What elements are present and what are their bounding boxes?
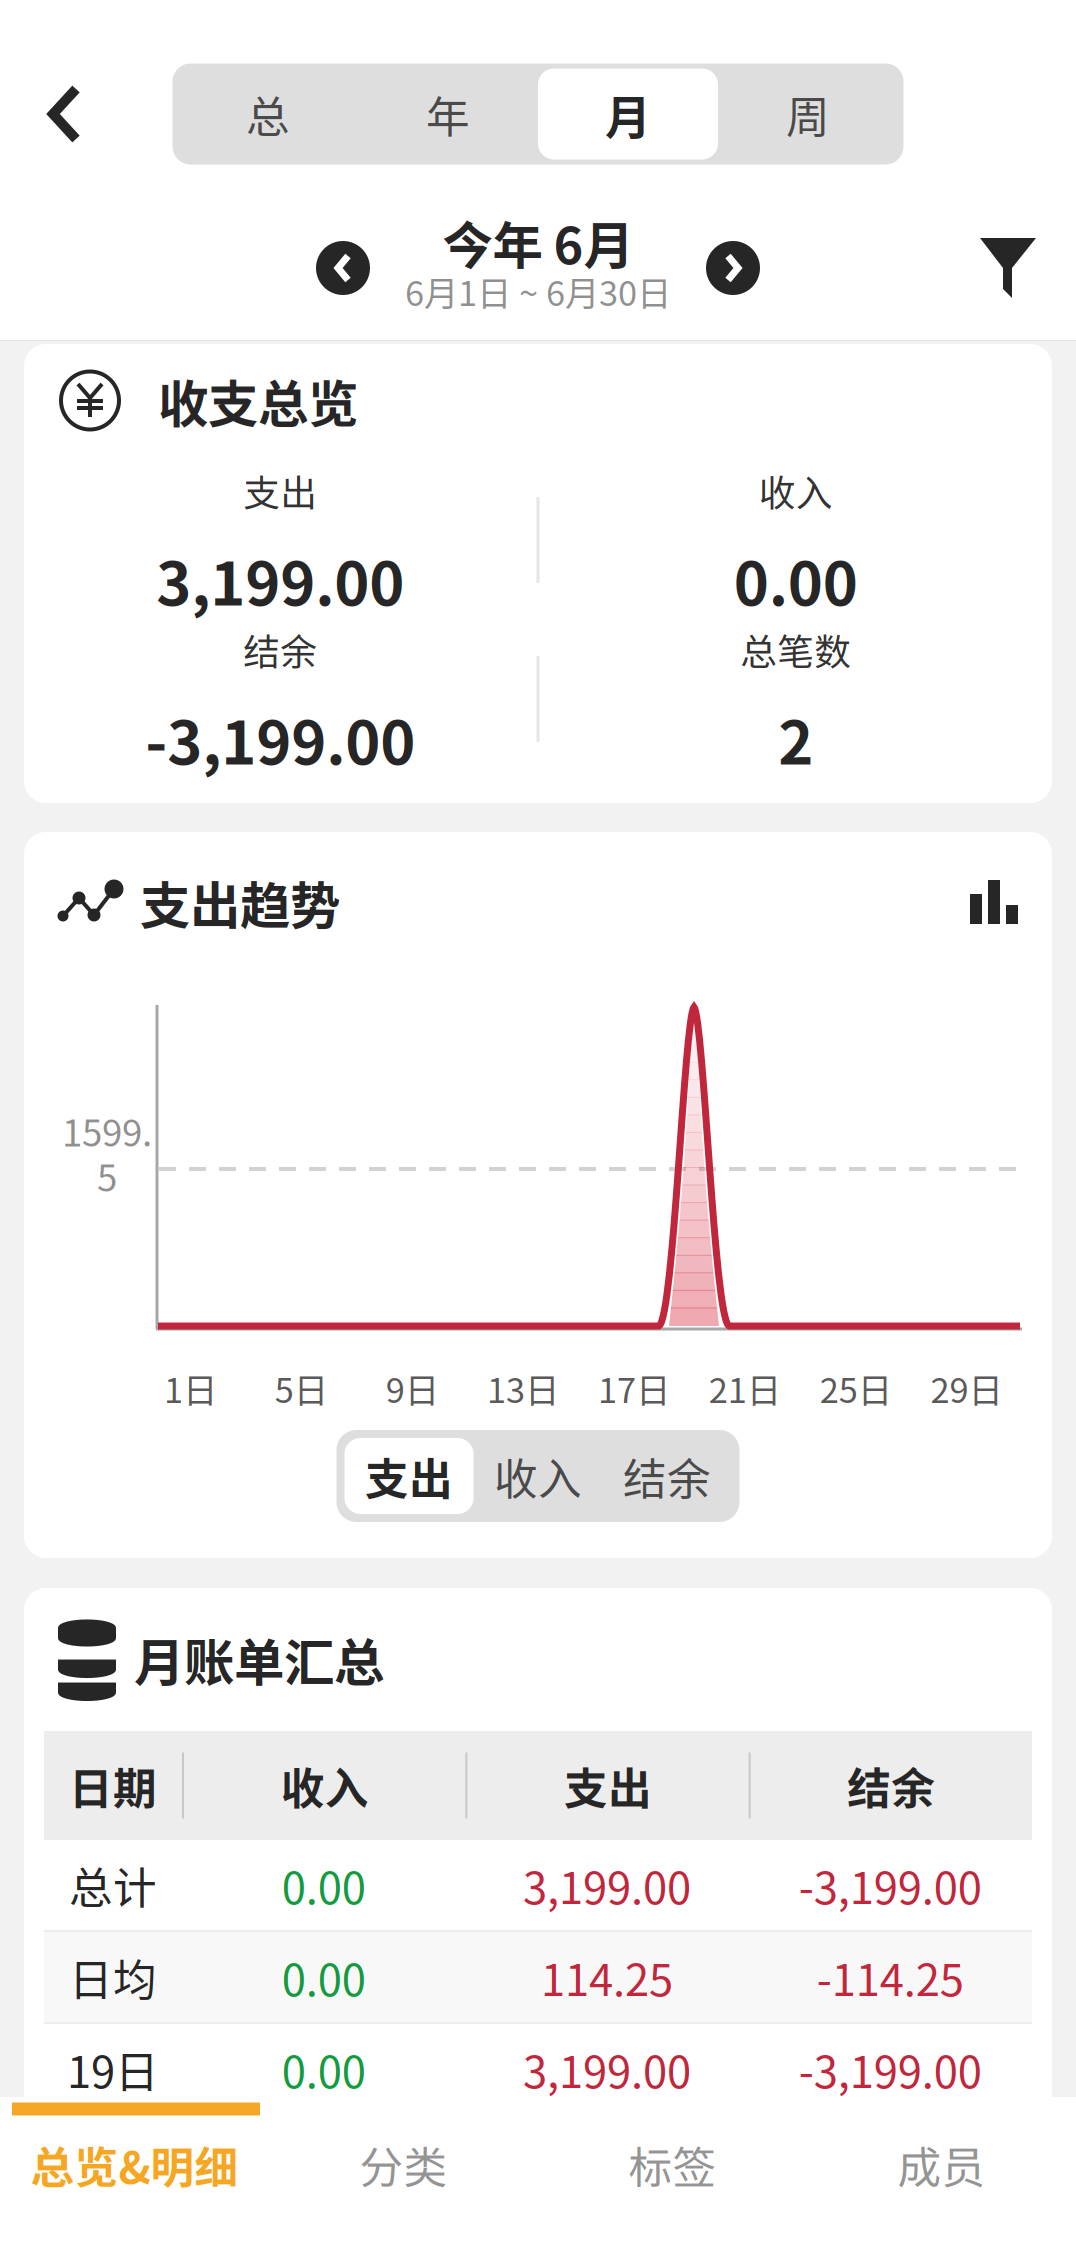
staticText: 5日 [275, 1363, 328, 1413]
staticText: 19日 [67, 2037, 159, 2101]
button[interactable]: 收入 [473, 1438, 602, 1514]
staticText: 分类 [359, 2133, 447, 2196]
button[interactable]: Next period [706, 241, 760, 295]
staticText: 25日 [820, 1363, 892, 1413]
staticText: 收入 [494, 1444, 582, 1508]
staticText: 结余 [243, 623, 317, 676]
staticText: 标签 [628, 2133, 716, 2196]
button[interactable]: Switch chart type [970, 878, 1018, 926]
button[interactable]: 结余 [602, 1438, 731, 1514]
staticText: 5 [97, 1149, 117, 1202]
staticText: 成员 [897, 2133, 985, 2196]
staticText: 支出 [564, 1754, 652, 1817]
staticText: 月 [605, 81, 651, 147]
staticText: 21日 [709, 1363, 781, 1413]
staticText: 支出 [365, 1444, 453, 1508]
staticText: 1日 [164, 1363, 217, 1413]
staticText: 日均 [69, 1945, 157, 2009]
staticText: 6月1日 ~ 6月30日 [405, 266, 671, 316]
staticText: 总览&明细 [30, 2133, 238, 2196]
staticText: 月账单汇总 [134, 1622, 384, 1696]
staticText: 日期 [69, 1754, 157, 1817]
staticText: 3,199.00 [523, 2037, 691, 2101]
button[interactable]: Filter [952, 212, 1064, 324]
staticText: 13日 [487, 1363, 559, 1413]
staticText: 年 [426, 82, 470, 146]
button[interactable]: 支出 [344, 1438, 473, 1514]
staticText: 17日 [598, 1363, 670, 1413]
staticText: 支出 [243, 464, 317, 517]
staticText: 1599. [62, 1104, 152, 1157]
staticText: 0.00 [734, 536, 858, 623]
staticText: 总笔数 [740, 623, 851, 676]
button[interactable]: 总览&明细 [0, 2097, 269, 2241]
staticText: 收入 [759, 464, 833, 517]
staticText: 9日 [386, 1363, 439, 1413]
button[interactable]: 标签 [538, 2097, 807, 2241]
button[interactable]: Previous period [316, 241, 370, 295]
staticText: -3,199.00 [799, 2037, 982, 2101]
staticText: 3,199.00 [156, 536, 404, 623]
staticText: 0.00 [282, 1945, 366, 2009]
staticText: 结余 [623, 1444, 711, 1508]
button[interactable]: 分类 [269, 2097, 538, 2241]
staticText: 总 [246, 82, 290, 146]
button[interactable]: Back [0, 49, 130, 179]
staticText: 2 [778, 695, 813, 782]
staticText: -3,199.00 [145, 695, 415, 782]
button[interactable]: 周 [718, 68, 898, 159]
staticText: -3,199.00 [799, 1853, 982, 1917]
button[interactable]: 成员 [807, 2097, 1076, 2241]
staticText: 0.00 [282, 2037, 366, 2101]
button[interactable]: 总 [178, 68, 358, 159]
staticText: 0.00 [282, 1853, 366, 1917]
staticText: 3,199.00 [523, 1853, 691, 1917]
staticText: 114.25 [541, 1945, 673, 2009]
staticText: -114.25 [817, 1945, 964, 2009]
staticText: 总计 [69, 1853, 157, 1917]
staticText: 收支总览 [158, 364, 358, 437]
staticText: 29日 [931, 1363, 1003, 1413]
staticText: 支出趋势 [140, 865, 340, 939]
button[interactable]: 月 [538, 68, 718, 159]
staticText: 收入 [281, 1754, 369, 1817]
button[interactable]: 年 [358, 68, 538, 159]
staticText: 今年 6月 [442, 205, 633, 279]
staticText: 结余 [847, 1754, 935, 1817]
staticText: 周 [786, 82, 830, 146]
